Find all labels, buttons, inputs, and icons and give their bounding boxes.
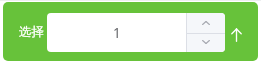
button[interactable]: 选择 — [19, 2, 50, 61]
button[interactable]: 1 — [47, 13, 186, 52]
staticText: 选择 — [19, 24, 44, 40]
button[interactable]: Scroll to top — [225, 5, 248, 61]
staticText: 1 — [113, 24, 121, 42]
button[interactable]: Increase value — [187, 13, 225, 33]
button[interactable]: Decrease value — [187, 34, 225, 52]
